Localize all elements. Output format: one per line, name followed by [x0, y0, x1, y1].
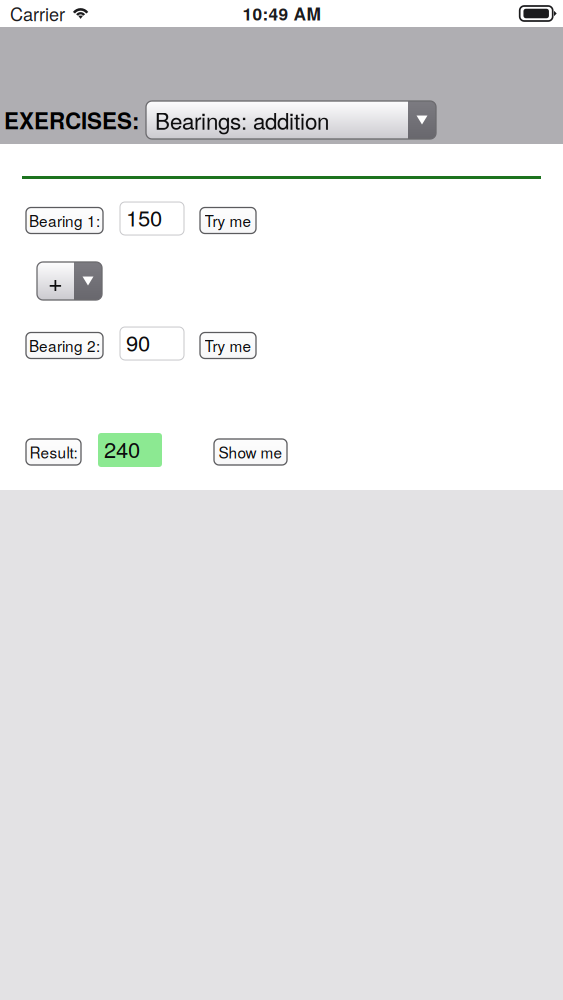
staticText: Try me — [204, 209, 251, 231]
button[interactable]: Show me — [214, 439, 287, 465]
button[interactable]: Try me — [200, 207, 256, 233]
staticText: Bearings: addition — [155, 104, 329, 136]
staticText: 10:49 AM — [242, 1, 320, 26]
staticText: 90 — [126, 326, 150, 358]
staticText: Try me — [204, 334, 251, 356]
staticText: + — [48, 263, 63, 299]
staticText: Result: — [29, 441, 77, 463]
staticText: Carrier — [10, 0, 65, 26]
staticText: Bearing 1: — [29, 209, 100, 231]
button[interactable]: Result: — [26, 439, 81, 465]
button[interactable]: Bearing 1: — [26, 207, 103, 233]
staticText: 240 — [104, 433, 140, 464]
staticText: Bearing 2: — [29, 334, 100, 356]
button[interactable]: Try me — [200, 332, 256, 358]
button[interactable]: + — [37, 262, 102, 300]
button[interactable]: Bearings: addition — [146, 101, 436, 139]
staticText: Show me — [218, 441, 282, 463]
staticText: EXERCISES: — [4, 104, 139, 136]
button[interactable]: Bearing 2: — [26, 332, 103, 358]
staticText: 150 — [126, 201, 162, 233]
